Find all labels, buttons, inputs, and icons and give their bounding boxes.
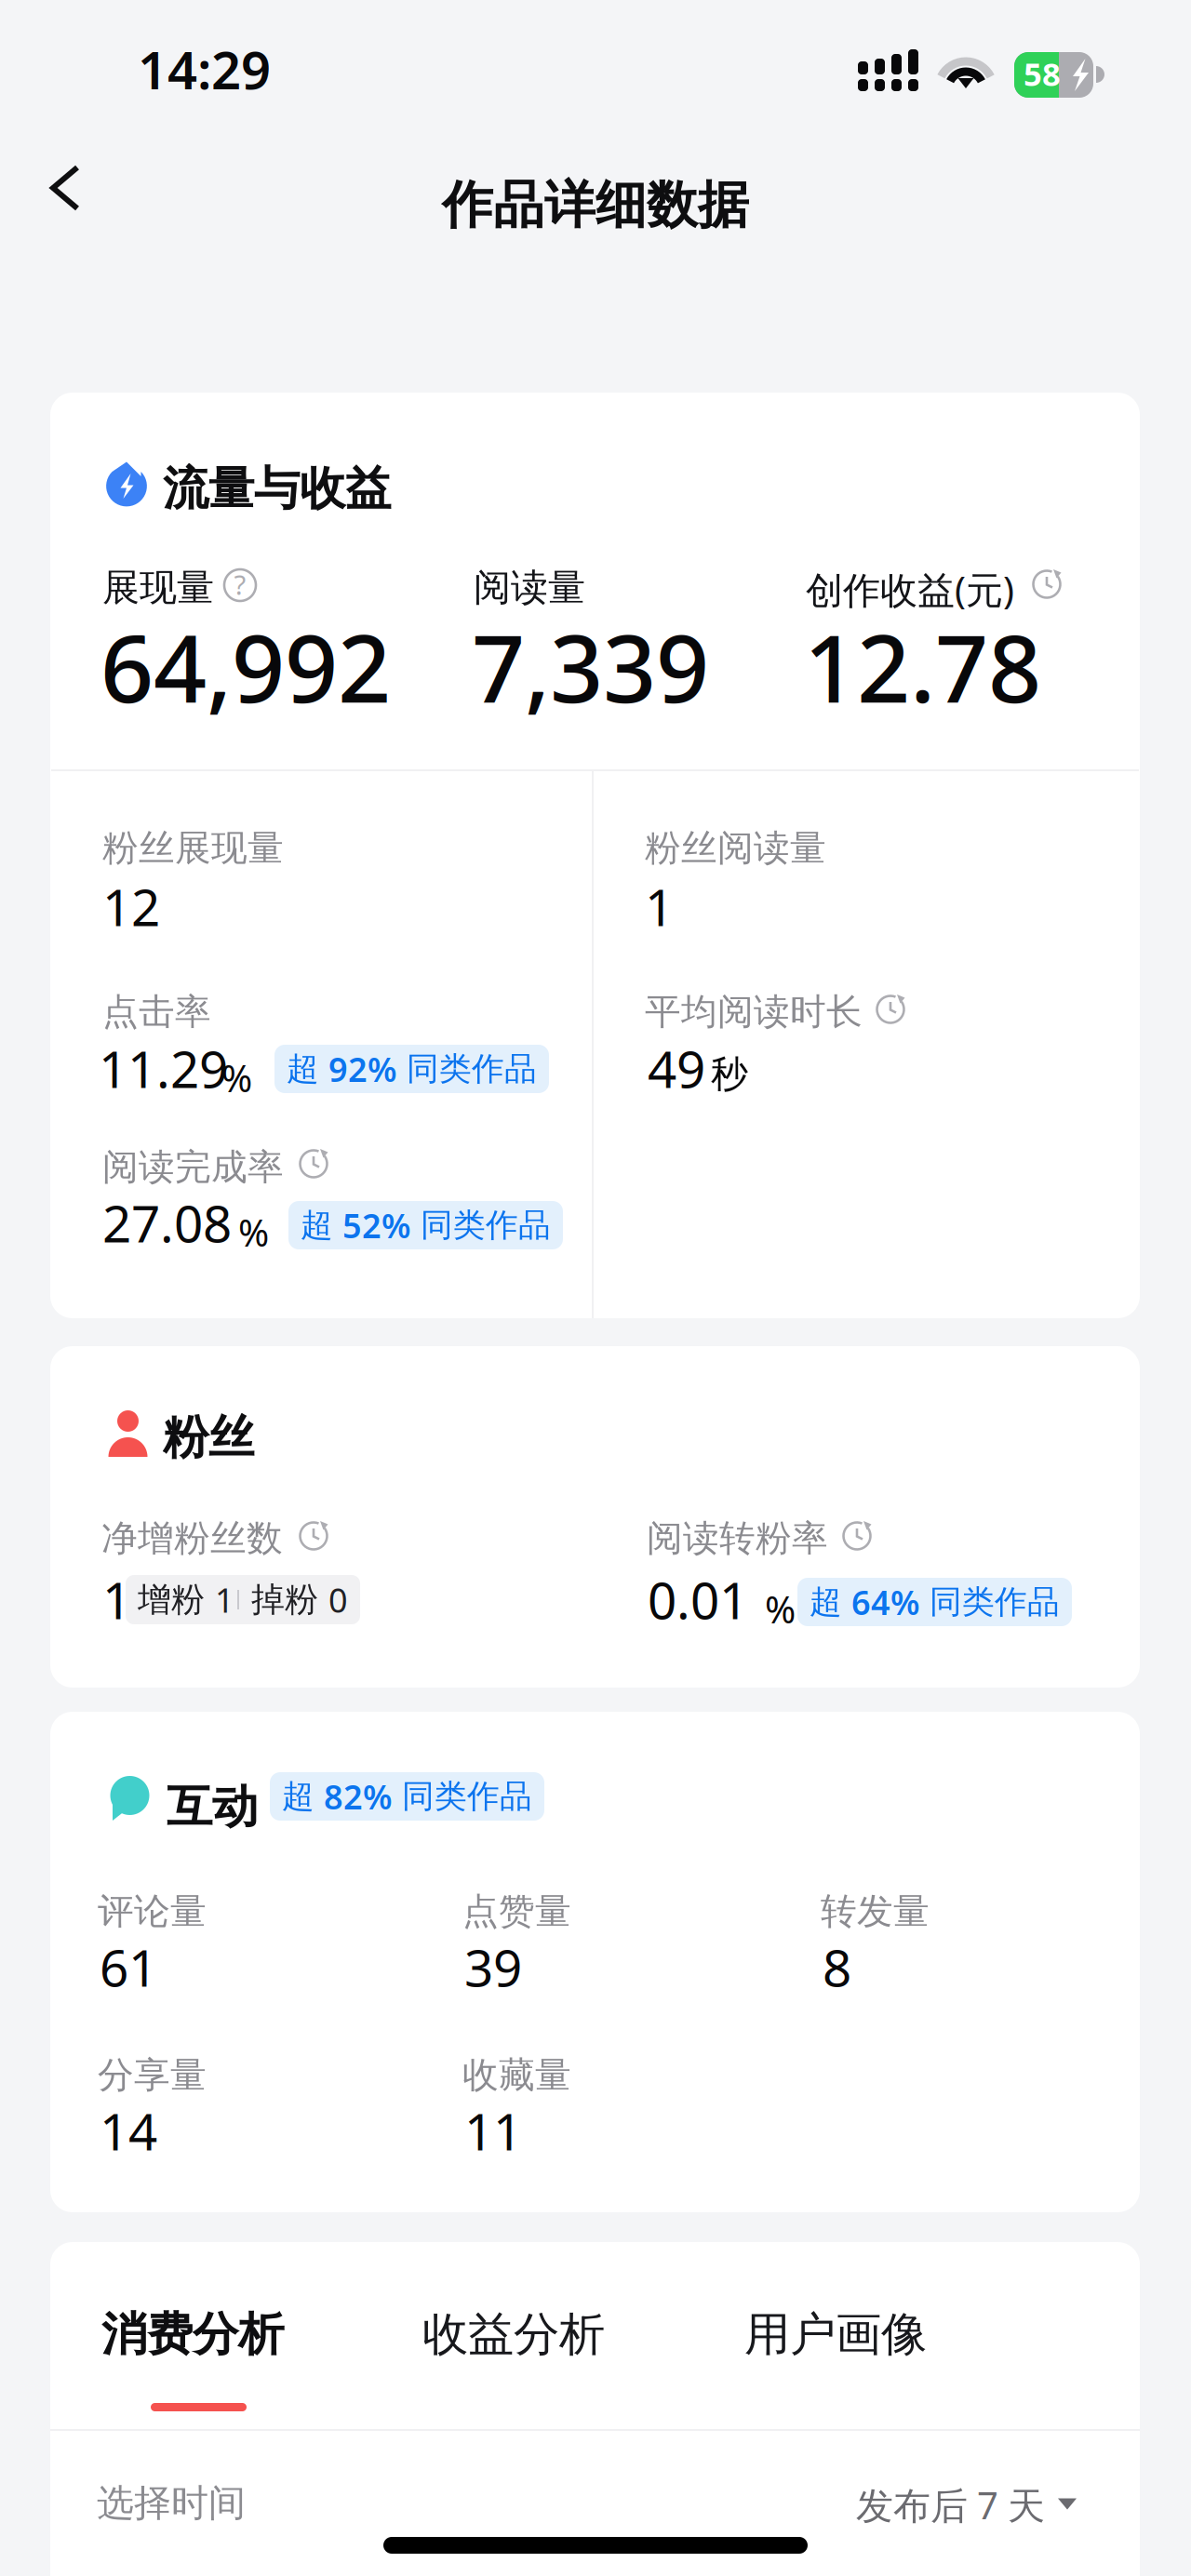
staticText: 净增粉丝数 [101, 1516, 283, 1561]
staticText: 作品详细数据 [442, 174, 749, 236]
staticText: 选择时间 [97, 2480, 246, 2526]
staticText: 61 [100, 1933, 157, 2001]
staticText: 分享量 [98, 2053, 207, 2097]
button[interactable]: 收益分析 [422, 2242, 623, 2419]
staticText: 收益分析 [422, 2306, 605, 2363]
staticText: 展现量 [102, 565, 214, 610]
staticText: % [221, 1053, 252, 1102]
staticText: 点赞量 [462, 1889, 571, 1934]
staticText: 52% [342, 1203, 411, 1247]
staticText: 64,992 [100, 605, 391, 728]
staticText: 超 [810, 1582, 851, 1622]
staticText: 超 [287, 1049, 328, 1089]
staticText: 14:29 [138, 34, 271, 104]
staticText: 转发量 [821, 1889, 930, 1934]
staticText: 粉丝阅读量 [645, 826, 826, 870]
staticText: 点击率 [102, 990, 211, 1034]
staticText: 流量与收益 [163, 460, 391, 517]
button[interactable]: Back [0, 140, 111, 236]
staticText: 同类作品 [397, 1049, 537, 1089]
staticText: 阅读完成率 [102, 1145, 284, 1189]
staticText: 14 [100, 2097, 157, 2164]
staticText: 同类作品 [411, 1205, 551, 1245]
staticText: 12 [102, 873, 160, 940]
staticText: 超 [301, 1205, 342, 1245]
staticText: 阅读量 [474, 565, 585, 610]
staticText: 1 [102, 1566, 131, 1633]
staticText: 12.78 [804, 605, 1041, 728]
staticText: 0.01 [648, 1566, 748, 1633]
staticText: 39 [464, 1933, 522, 2001]
staticText: 创作收益(元) [806, 565, 1014, 614]
staticText: 11.29 [99, 1034, 228, 1102]
staticText: % [765, 1584, 796, 1634]
button[interactable]: 用户画像 [744, 2242, 945, 2419]
button[interactable]: 消费分析 [101, 2242, 302, 2419]
staticText: 49 [648, 1034, 705, 1102]
staticText: 评论量 [98, 1889, 207, 1934]
staticText: 消费分析 [101, 2306, 284, 2363]
staticText: 增粉 [138, 1579, 215, 1620]
staticText [234, 1577, 251, 1622]
staticText: 同类作品 [920, 1582, 1060, 1622]
staticText: 掉粉 [251, 1579, 328, 1620]
staticText: 阅读转粉率 [647, 1516, 828, 1561]
staticText: % [238, 1208, 269, 1257]
staticText: 27.08 [102, 1189, 232, 1256]
staticText: ? [234, 566, 246, 602]
staticText: 超 [282, 1777, 324, 1816]
staticText: 82% [324, 1774, 393, 1819]
staticText: 1 [215, 1577, 234, 1622]
staticText: 平均阅读时长 [645, 990, 863, 1034]
staticText: 互动 [167, 1779, 258, 1835]
staticText: 1 [645, 873, 674, 940]
staticText: 秒 [711, 1051, 748, 1097]
button[interactable]: 发布后 7 天 [856, 2480, 1077, 2530]
staticText: 粉丝展现量 [102, 826, 284, 870]
staticText: 7,339 [472, 605, 709, 728]
staticText: 收藏量 [462, 2053, 571, 2097]
staticText: 92% [328, 1047, 397, 1091]
staticText: 同类作品 [393, 1777, 532, 1816]
staticText: 用户画像 [744, 2306, 927, 2363]
staticText: 11 [464, 2097, 522, 2164]
staticText: 8 [823, 1933, 851, 2001]
staticText: 发布后 7 天 [856, 2480, 1045, 2530]
staticText: 58 [1024, 52, 1061, 95]
staticText: 64% [851, 1580, 920, 1624]
staticText: 0 [328, 1577, 348, 1622]
staticText: 粉丝 [163, 1409, 254, 1466]
